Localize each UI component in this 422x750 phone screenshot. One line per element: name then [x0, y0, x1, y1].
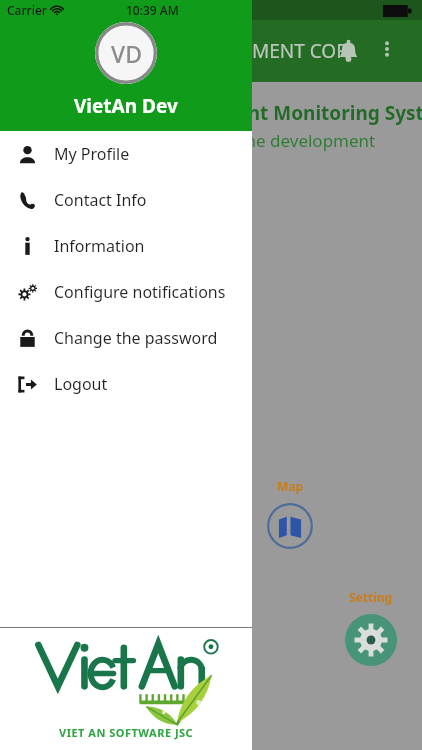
button[interactable]: More options [370, 32, 404, 66]
staticText: Carrier [7, 2, 47, 18]
staticText: Change the password [54, 327, 218, 349]
staticText: My Profile [54, 143, 130, 165]
staticText: Industrial zone development [146, 129, 376, 152]
button[interactable]: Configure notifications [0, 269, 252, 315]
button[interactable]: Setting [340, 589, 402, 666]
button[interactable]: Change the password [0, 315, 252, 361]
button[interactable]: Information [0, 223, 252, 269]
staticText: Configure notifications [54, 281, 226, 303]
staticText: VietAn Dev [74, 93, 178, 119]
staticText: Contact Info [54, 189, 147, 211]
staticText: VIET AN SOFTWARE JSC [59, 725, 194, 740]
button[interactable]: Contact Info [0, 177, 252, 223]
staticText: 10:39 AM [126, 2, 179, 18]
staticText: ENVIRONMENT COR [168, 38, 348, 64]
button[interactable]: Logout [0, 361, 252, 407]
button[interactable]: VD [95, 22, 157, 84]
staticText: VD [111, 38, 142, 69]
button[interactable]: Map [260, 478, 320, 549]
staticText: Environment Monitoring System [146, 100, 422, 126]
staticText: Information [54, 235, 145, 257]
staticText: Setting [349, 589, 393, 605]
staticText: Map [277, 478, 304, 494]
button[interactable]: Notifications [330, 32, 366, 68]
button[interactable]: My Profile [0, 131, 252, 177]
staticText: Logout [54, 373, 108, 395]
